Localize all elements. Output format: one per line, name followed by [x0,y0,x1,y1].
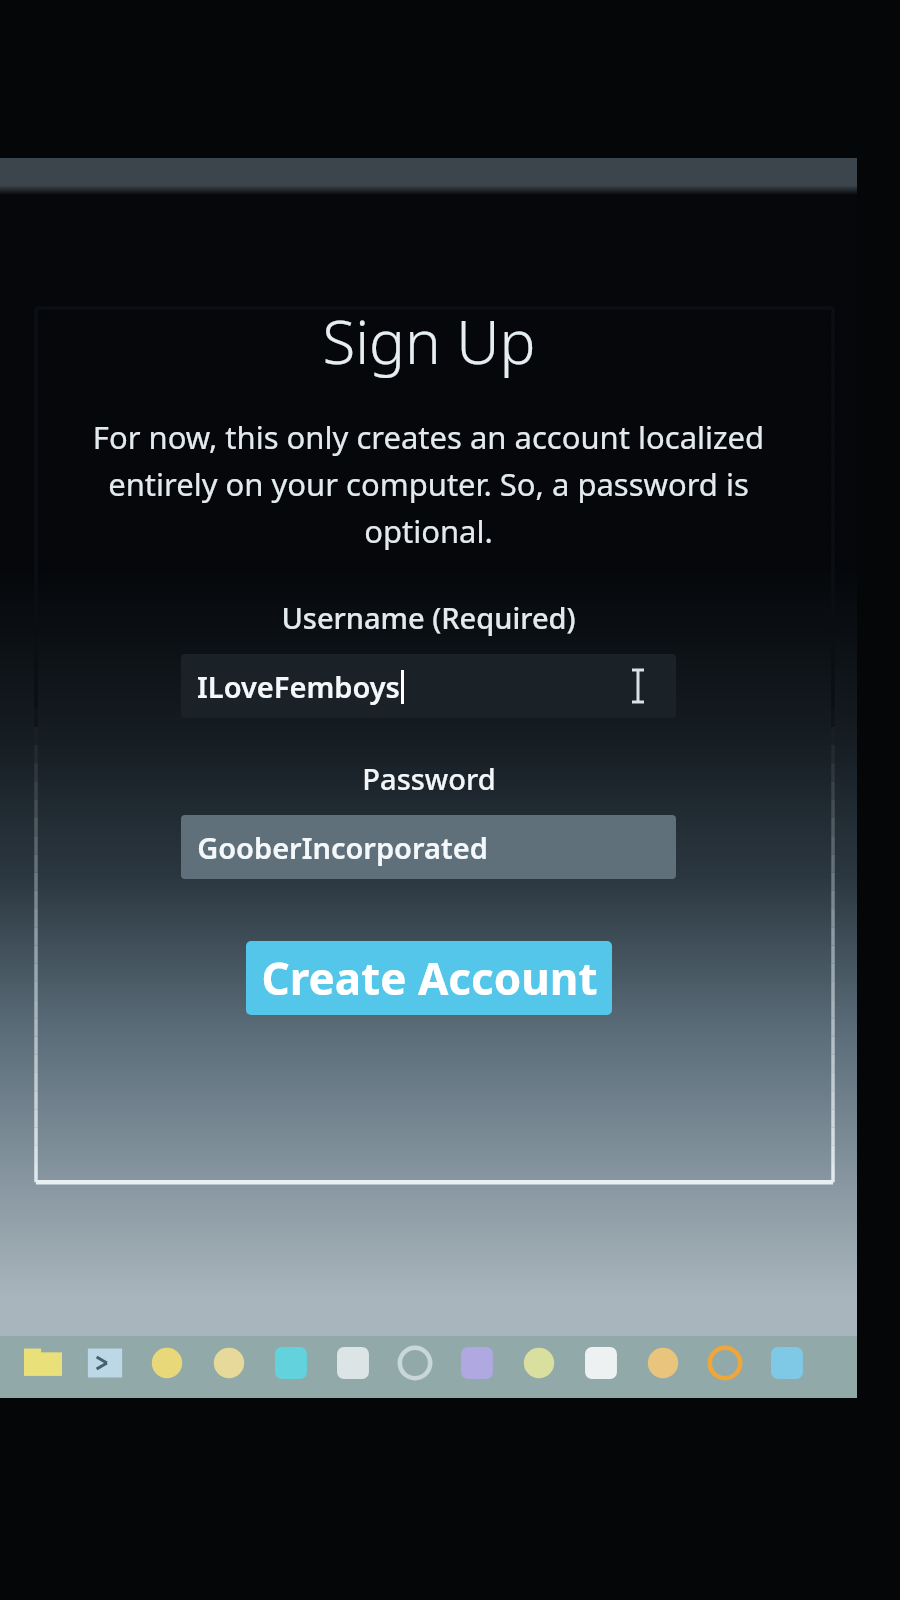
button[interactable]: Create Account [246,941,612,1015]
staticText: ILoveFemboys [197,667,400,706]
button[interactable]: Taskbar app 9 [574,1336,628,1390]
button[interactable]: Taskbar app 10 [636,1336,690,1390]
button[interactable]: Taskbar app 12 [760,1336,814,1390]
button[interactable]: Taskbar app 0 [16,1336,70,1390]
button[interactable]: Taskbar app 2 [140,1336,194,1390]
button[interactable]: Taskbar app 3 [202,1336,256,1390]
button[interactable]: Password field [181,815,676,879]
button[interactable]: Taskbar app 1 [78,1336,132,1390]
staticText: Password [362,759,496,798]
staticText: GooberIncorporated [197,828,488,867]
button[interactable]: Username field [181,654,676,718]
staticText: Create Account [261,948,598,1008]
staticText: For now, this only creates an account lo… [70,416,787,552]
button[interactable]: Taskbar app 4 [264,1336,318,1390]
button[interactable]: Taskbar app 6 [388,1336,442,1390]
button[interactable]: Taskbar app 7 [450,1336,504,1390]
staticText: Sign Up [322,300,536,382]
button[interactable]: Taskbar app 8 [512,1336,566,1390]
button[interactable]: Taskbar app 11 [698,1336,752,1390]
button[interactable]: Taskbar app 5 [326,1336,380,1390]
staticText: Username (Required) [281,598,576,637]
